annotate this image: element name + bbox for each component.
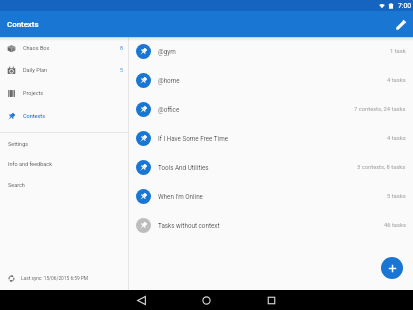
staticText: 7:00 (398, 2, 412, 10)
staticText: 4 tasks (387, 135, 406, 142)
staticText: If I Have Some Free Time (158, 135, 229, 142)
staticText: Projects (23, 90, 44, 96)
staticText: Contexts (7, 20, 39, 29)
button[interactable]: @home (129, 66, 413, 95)
button[interactable]: Add (381, 257, 403, 279)
button[interactable]: Recents (239, 290, 304, 310)
button[interactable]: Settings (0, 133, 128, 154)
button[interactable]: Projects (0, 82, 128, 104)
staticText: 46 tasks (384, 222, 406, 229)
staticText: Tasks without context (158, 222, 220, 229)
staticText: Chaos Box (23, 45, 50, 51)
button[interactable]: Back (109, 290, 174, 310)
button[interactable]: Search (0, 174, 128, 195)
staticText: When I'm Online (158, 193, 203, 200)
staticText: 3 contexts, 8 tasks (357, 164, 406, 171)
staticText: @home (158, 77, 180, 84)
button[interactable]: Contexts (0, 105, 128, 127)
staticText: @gym (158, 48, 176, 55)
button[interactable]: Edit (393, 16, 409, 32)
button[interactable]: @gym (129, 37, 413, 66)
button[interactable]: Daily Plan (0, 59, 128, 81)
staticText: 7 contexts, 24 tasks (354, 106, 406, 113)
button[interactable]: Info and feedback (0, 153, 128, 174)
button[interactable]: @office (129, 95, 413, 124)
button[interactable]: Last sync: 15/06/2015 6:59 PM (0, 267, 128, 290)
staticText: 4 tasks (387, 77, 406, 84)
staticText: 5 tasks (387, 193, 406, 200)
button[interactable]: Tools And Utilities (129, 153, 413, 182)
staticText: Info and feedback (8, 161, 52, 167)
staticText: 5 (120, 67, 123, 73)
staticText: Daily Plan (23, 67, 48, 73)
staticText: Contexts (23, 113, 45, 119)
staticText: 8 (120, 45, 123, 51)
button[interactable]: If I Have Some Free Time (129, 124, 413, 153)
staticText: Last sync: 15/06/2015 6:59 PM (21, 276, 89, 282)
staticText: 1 task (390, 48, 406, 55)
staticText: @office (158, 106, 180, 113)
staticText: Tools And Utilities (158, 164, 209, 171)
button[interactable]: Chaos Box (0, 37, 128, 59)
staticText: Search (8, 182, 25, 188)
button[interactable]: When I'm Online (129, 182, 413, 211)
staticText: Settings (8, 141, 29, 147)
button[interactable]: Tasks without context (129, 211, 413, 240)
button[interactable]: Home (174, 290, 239, 310)
